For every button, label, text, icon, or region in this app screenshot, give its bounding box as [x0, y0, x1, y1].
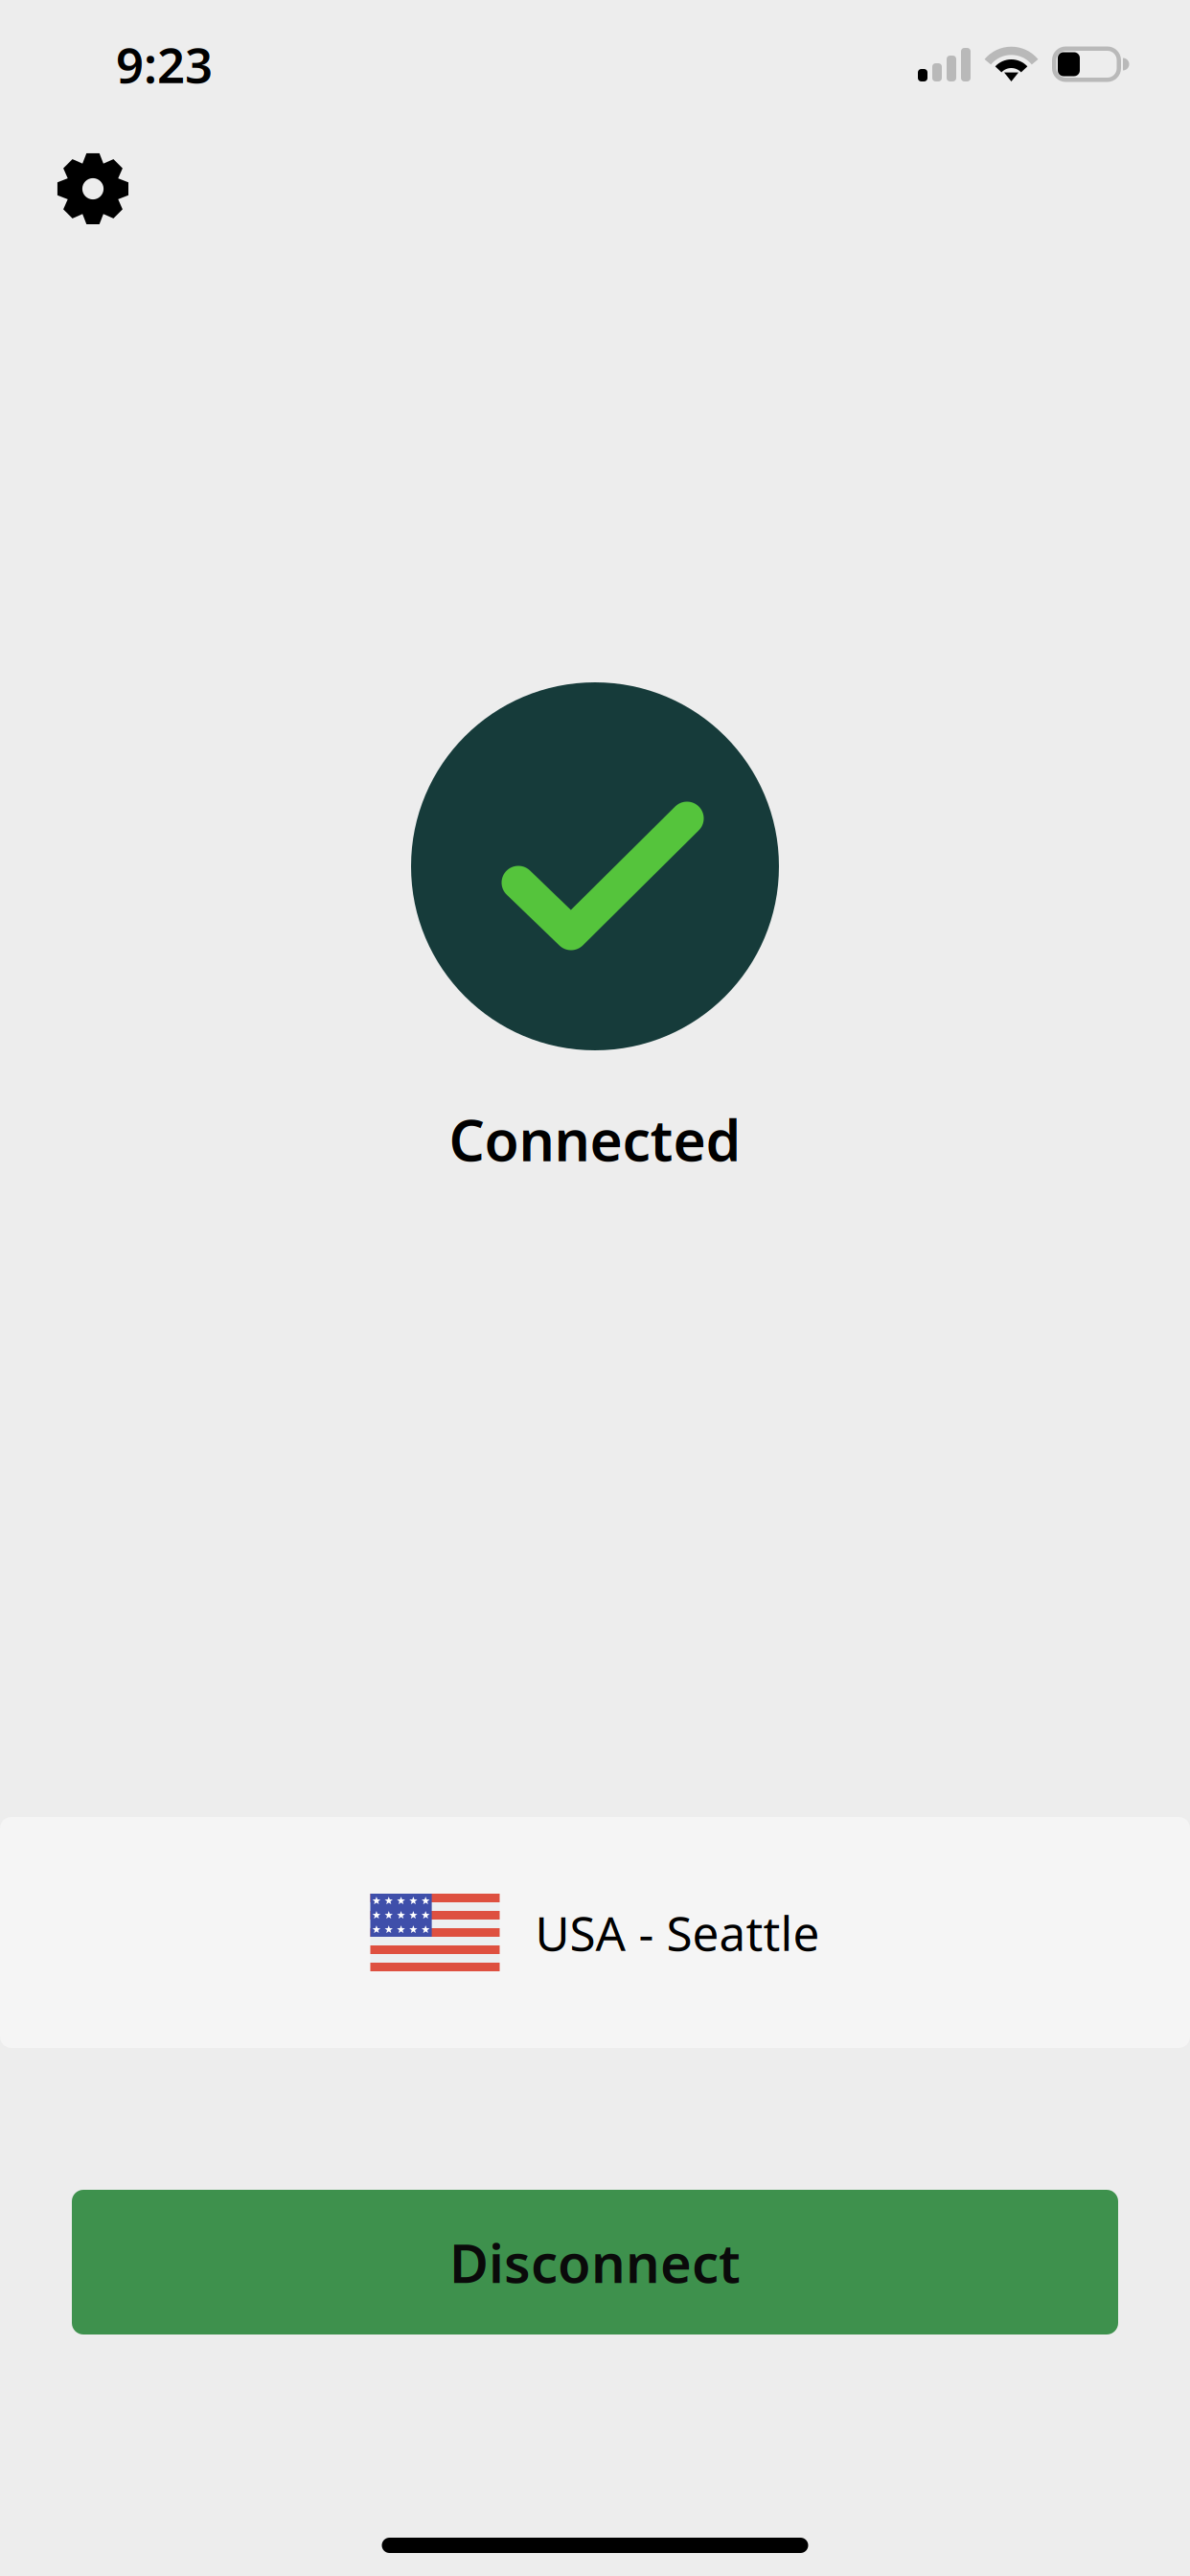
staticText: Disconnect [449, 2226, 741, 2298]
staticText: Connected [449, 1102, 741, 1177]
staticText: 9:23 [116, 32, 213, 97]
button[interactable]: USA - Seattle [0, 1817, 1190, 2048]
button[interactable]: Disconnect [72, 2190, 1118, 2334]
staticText: USA - Seattle [535, 1901, 820, 1964]
button[interactable]: Settings [0, 128, 163, 249]
